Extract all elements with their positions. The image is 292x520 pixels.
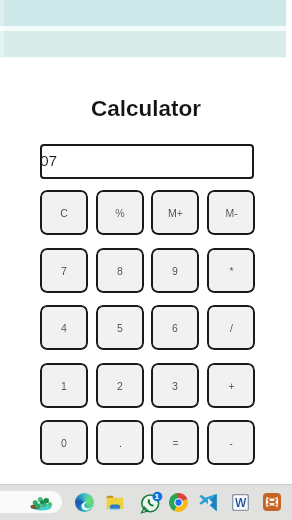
- staticText: 7: [61, 265, 67, 277]
- staticText: M-: [225, 207, 238, 219]
- button[interactable]: WhatsApp: [138, 489, 164, 515]
- staticText: 0: [61, 437, 67, 449]
- staticText: 3: [172, 380, 178, 392]
- button[interactable]: 0: [40, 420, 88, 465]
- button[interactable]: 8: [96, 248, 144, 293]
- button[interactable]: Microsoft Edge: [71, 489, 97, 515]
- button[interactable]: Visual Studio Code: [195, 489, 221, 515]
- staticText: 6: [172, 322, 178, 334]
- staticText: /: [230, 322, 233, 334]
- staticText: 2: [117, 380, 123, 392]
- staticText: 1: [61, 380, 67, 392]
- staticText: 9: [172, 265, 178, 277]
- button[interactable]: M-: [207, 190, 255, 235]
- staticText: 5: [117, 322, 123, 334]
- button[interactable]: C: [40, 190, 88, 235]
- staticText: %: [115, 207, 125, 219]
- button[interactable]: +: [207, 363, 255, 408]
- staticText: .: [119, 437, 122, 449]
- staticText: 8: [117, 265, 123, 277]
- button[interactable]: -: [207, 420, 255, 465]
- button[interactable]: 4: [40, 305, 88, 350]
- button[interactable]: Google Chrome: [165, 489, 191, 515]
- button[interactable]: %: [96, 190, 144, 235]
- button[interactable]: 9: [151, 248, 199, 293]
- staticText: =: [172, 437, 179, 449]
- button[interactable]: 07: [40, 144, 254, 179]
- button[interactable]: Search: [0, 491, 62, 513]
- button[interactable]: 1: [40, 363, 88, 408]
- staticText: Calculator: [91, 96, 202, 121]
- staticText: +: [228, 380, 235, 392]
- button[interactable]: 3: [151, 363, 199, 408]
- button[interactable]: 6: [151, 305, 199, 350]
- button[interactable]: 5: [96, 305, 144, 350]
- staticText: M+: [168, 207, 183, 219]
- button[interactable]: 7: [40, 248, 88, 293]
- button[interactable]: Search: [28, 489, 54, 515]
- staticText: W: [235, 496, 247, 509]
- button[interactable]: =: [151, 420, 199, 465]
- staticText: C: [60, 207, 68, 219]
- button[interactable]: /: [207, 305, 255, 350]
- button[interactable]: File Explorer: [102, 489, 128, 515]
- staticText: 07: [40, 152, 58, 169]
- button[interactable]: *: [207, 248, 255, 293]
- button[interactable]: XAMPP: [259, 489, 285, 515]
- button[interactable]: .: [96, 420, 144, 465]
- staticText: *: [229, 265, 234, 277]
- staticText: 1: [155, 493, 159, 501]
- staticText: -: [229, 437, 233, 449]
- button[interactable]: Microsoft Word: [227, 489, 253, 515]
- button[interactable]: 2: [96, 363, 144, 408]
- button[interactable]: M+: [151, 190, 199, 235]
- staticText: 4: [61, 322, 67, 334]
